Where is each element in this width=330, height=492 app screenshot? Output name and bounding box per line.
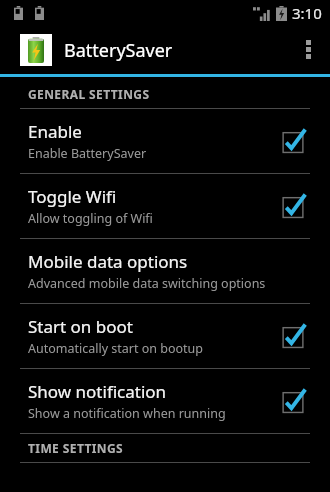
- staticText: Toggle Wifi: [28, 185, 117, 208]
- staticText: Mobile data options: [28, 250, 188, 273]
- staticText: BatterySaver: [64, 38, 286, 63]
- button[interactable]: More options: [286, 26, 330, 74]
- staticText: Show notification: [28, 380, 167, 403]
- button[interactable]: Start on boot: [0, 304, 330, 369]
- staticText: TIME SETTINGS: [28, 440, 124, 456]
- button[interactable]: Show notification: [0, 369, 330, 434]
- staticText: 3:10: [292, 3, 322, 23]
- staticText: Enable: [28, 120, 82, 143]
- button[interactable]: Mobile data options: [0, 239, 330, 304]
- staticText: GENERAL SETTINGS: [28, 86, 150, 102]
- button[interactable]: Toggle Wifi: [0, 174, 330, 239]
- staticText: Show a notification when running: [28, 405, 226, 422]
- staticText: Allow toggling of Wifi: [28, 210, 153, 227]
- staticText: Enable BatterySaver: [28, 145, 147, 162]
- staticText: Start on boot: [28, 315, 133, 338]
- staticText: Advanced mobile data switching options: [28, 275, 266, 292]
- button[interactable]: Enable: [0, 109, 330, 174]
- staticText: Automatically start on bootup: [28, 340, 204, 357]
